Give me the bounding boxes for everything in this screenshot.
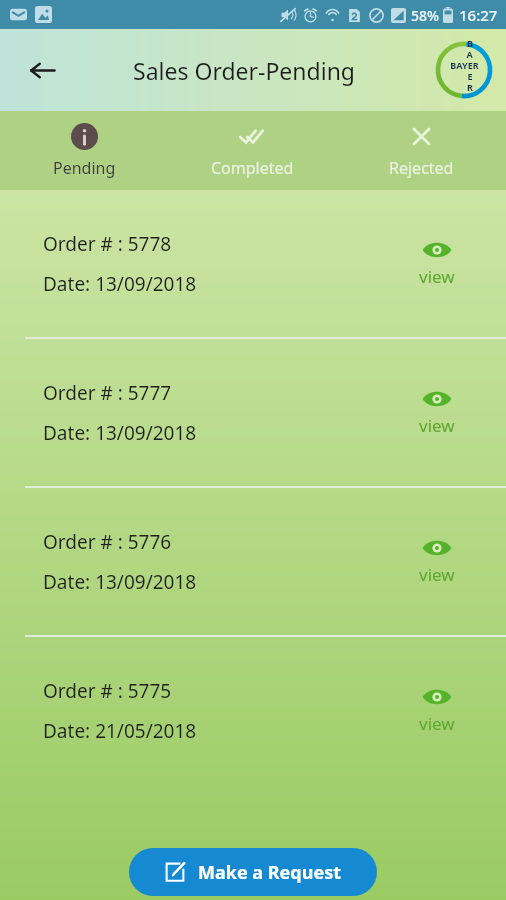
- button[interactable]: Order # : 5776: [0, 488, 506, 635]
- button[interactable]: Pending: [0, 111, 168, 190]
- staticText: E: [467, 70, 473, 82]
- staticText: view: [419, 563, 455, 586]
- staticText: Rejected: [389, 157, 454, 179]
- staticText: BAYER: [450, 59, 479, 71]
- button[interactable]: Make a Request: [129, 848, 377, 896]
- staticText: R: [467, 81, 473, 93]
- staticText: Order # : 5775: [43, 678, 172, 704]
- button[interactable]: Back: [18, 46, 66, 94]
- staticText: view: [419, 712, 455, 735]
- staticText: Order # : 5778: [43, 231, 172, 257]
- staticText: A: [466, 48, 473, 60]
- staticText: view: [419, 265, 455, 288]
- button[interactable]: Rejected: [337, 111, 506, 190]
- staticText: Date: 13/09/2018: [43, 271, 197, 297]
- staticText: Sales Order-Pending: [133, 55, 355, 86]
- button[interactable]: Order # : 5778: [0, 190, 506, 337]
- button[interactable]: view: [413, 532, 461, 592]
- button[interactable]: Bayer logo: [432, 38, 496, 102]
- button[interactable]: Order # : 5777: [0, 339, 506, 486]
- button[interactable]: Completed: [168, 111, 337, 190]
- staticText: Date: 21/05/2018: [43, 718, 197, 744]
- button[interactable]: Order # : 5775: [0, 637, 506, 784]
- staticText: Date: 13/09/2018: [43, 420, 197, 446]
- button[interactable]: view: [413, 234, 461, 294]
- staticText: 16:27: [459, 5, 498, 25]
- staticText: Order # : 5776: [43, 529, 172, 555]
- staticText: 58%: [411, 6, 439, 25]
- staticText: Completed: [211, 157, 294, 179]
- staticText: Pending: [53, 157, 116, 179]
- staticText: view: [419, 414, 455, 437]
- button[interactable]: view: [413, 681, 461, 741]
- button[interactable]: view: [413, 383, 461, 443]
- staticText: Date: 13/09/2018: [43, 569, 197, 595]
- staticText: Order # : 5777: [43, 380, 172, 406]
- staticText: B: [467, 37, 473, 49]
- staticText: Make a Request: [198, 860, 342, 885]
